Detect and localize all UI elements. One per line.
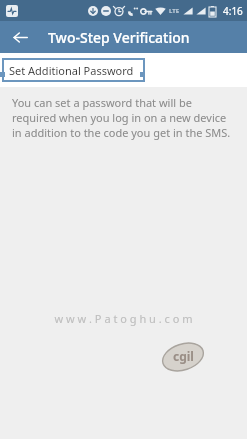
button[interactable]: Set Additional Password — [0, 53, 247, 87]
staticText: You can set a password that will be requ… — [12, 95, 237, 140]
button[interactable]: Back — [8, 25, 32, 49]
staticText: 4:16 — [223, 4, 243, 18]
staticText: Set Additional Password — [9, 63, 134, 78]
staticText: LTE — [169, 7, 180, 15]
staticText: Two-Step Verification — [48, 28, 190, 47]
staticText: cgil — [173, 348, 194, 364]
staticText: w w w . P a t o g h u . c o m — [0, 311, 247, 326]
